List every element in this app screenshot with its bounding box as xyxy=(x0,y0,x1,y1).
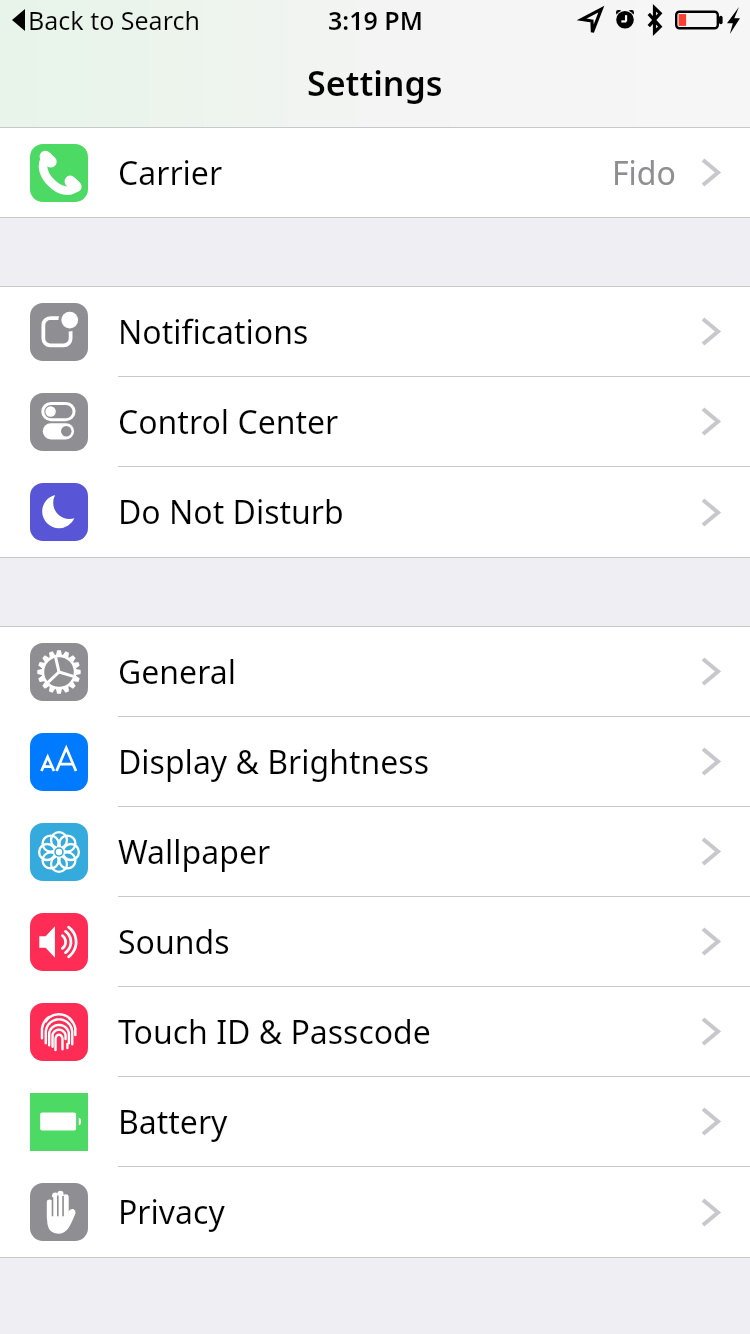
staticText: General xyxy=(118,650,236,694)
staticText: 3:19 PM xyxy=(328,3,423,37)
button[interactable]: Sounds xyxy=(0,897,750,987)
button[interactable]: Control Center xyxy=(0,377,750,467)
staticText: Battery xyxy=(118,1100,228,1144)
button[interactable]: Touch ID & Passcode xyxy=(0,987,750,1077)
staticText: Carrier xyxy=(118,151,223,195)
staticText: Control Center xyxy=(118,400,339,444)
staticText: Privacy xyxy=(118,1190,225,1234)
staticText: Sounds xyxy=(118,920,230,964)
staticText: Back to Search xyxy=(28,3,200,37)
button[interactable]: Display & Brightness xyxy=(0,717,750,807)
button[interactable]: General xyxy=(0,627,750,717)
button[interactable]: Do Not Disturb xyxy=(0,467,750,557)
other: Status: location, alarm, bluetooth, batt… xyxy=(580,6,740,34)
button[interactable]: Carrier xyxy=(0,128,750,217)
button[interactable]: Wallpaper xyxy=(0,807,750,897)
staticText: Wallpaper xyxy=(118,830,271,874)
staticText: Do Not Disturb xyxy=(118,490,344,534)
staticText: Fido xyxy=(612,151,676,195)
staticText: Notifications xyxy=(118,310,309,354)
staticText: Settings xyxy=(307,60,443,106)
button[interactable]: Notifications xyxy=(0,287,750,377)
button[interactable]: Privacy xyxy=(0,1167,750,1257)
staticText: Display & Brightness xyxy=(118,740,429,784)
button[interactable]: Battery xyxy=(0,1077,750,1167)
button[interactable]: Back to Search xyxy=(0,0,208,40)
staticText: Touch ID & Passcode xyxy=(118,1010,431,1054)
